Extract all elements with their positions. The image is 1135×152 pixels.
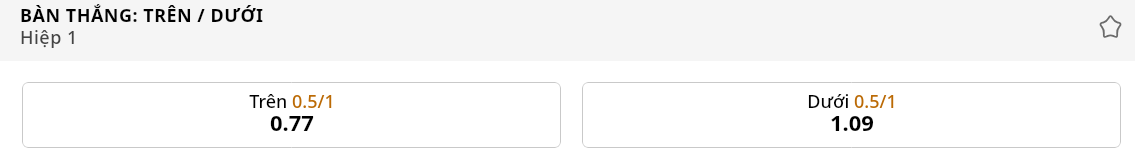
staticText: 0.77 — [270, 107, 314, 137]
button[interactable]: Favorite — [1088, 5, 1132, 49]
staticText: Hiệp 1 — [20, 25, 78, 50]
button[interactable]: Trên 0.5/1 — [22, 82, 561, 148]
button[interactable]: Dưới 0.5/1 — [582, 82, 1121, 148]
staticText: Trên 0.5/1 — [249, 89, 335, 114]
staticText: BÀN THẮNG: TRÊN / DƯỚI — [20, 3, 264, 28]
staticText: Dưới 0.5/1 — [807, 89, 897, 114]
staticText: 1.09 — [830, 107, 874, 137]
